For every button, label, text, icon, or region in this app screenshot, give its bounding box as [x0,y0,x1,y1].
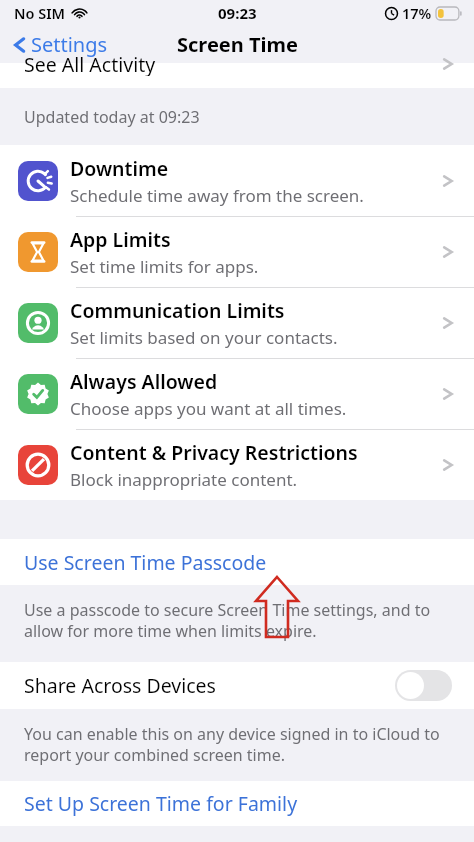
staticText: Screen Time [177,31,298,58]
button[interactable]: Communication Limits [0,287,474,358]
staticText: Choose apps you want at all times. [70,397,347,420]
button[interactable]: Set Up Screen Time for Family [0,781,474,826]
staticText: You can enable this on any device signed… [24,723,454,766]
button[interactable]: See All Activity [0,63,474,88]
staticText: See All Activity [24,51,156,76]
button[interactable]: Share Across Devices toggle, off [395,670,452,701]
staticText: Schedule time away from the screen. [70,184,364,207]
button[interactable]: Always Allowed [0,358,474,429]
staticText: Communication Limits [70,297,285,324]
staticText: App Limits [70,226,171,253]
staticText: No SIM [14,3,66,23]
staticText: Use a passcode to secure Screen Time set… [24,599,454,642]
staticText: Block inappropriate content. [70,468,298,491]
staticText: Set Up Screen Time for Family [24,790,298,817]
button[interactable]: Share Across Devices [0,662,474,709]
staticText: Settings [31,31,108,58]
staticText: Use Screen Time Passcode [24,549,267,576]
staticText: 17% [402,3,432,23]
staticText: Content & Privacy Restrictions [70,439,358,466]
staticText: Set limits based on your contacts. [70,326,338,349]
staticText: Downtime [70,155,169,182]
staticText: 09:23 [218,3,257,23]
staticText: Share Across Devices [24,672,395,699]
staticText: Always Allowed [70,368,218,395]
button[interactable]: Use Screen Time Passcode [0,539,474,585]
staticText: Updated today at 09:23 [24,106,200,128]
button[interactable]: Downtime [0,145,474,216]
staticText: Set time limits for apps. [70,255,259,278]
button[interactable]: Content & Privacy Restrictions [0,429,474,500]
button[interactable]: App Limits [0,216,474,287]
button[interactable]: Settings [13,31,108,58]
